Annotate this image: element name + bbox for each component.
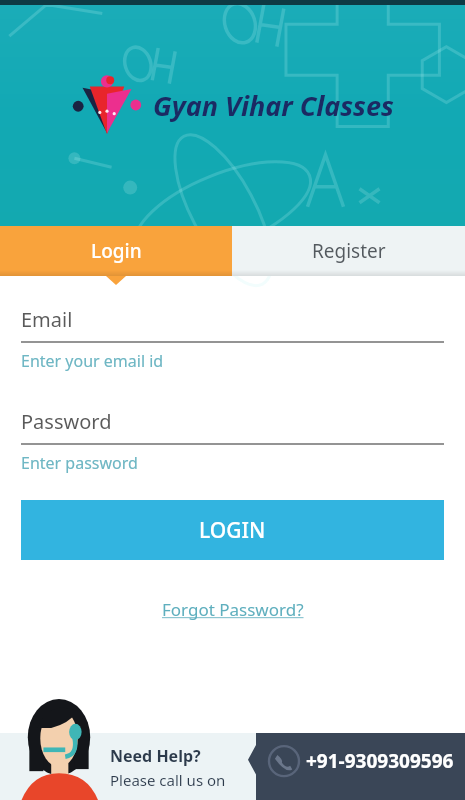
button[interactable]: Email [0,306,465,372]
staticText: Email [21,306,73,333]
staticText: Register [312,238,386,264]
staticText: Login [91,238,142,264]
staticText: Enter your email id [21,350,164,372]
staticText: LOGIN [199,516,266,545]
staticText: Need Help? [110,745,201,767]
button[interactable]: LOGIN [21,500,444,560]
button[interactable]: Forgot Password? [156,592,310,627]
button[interactable]: Password [0,408,465,474]
staticText: Password [21,408,112,435]
staticText: Please call us on [110,770,226,790]
staticText: Gyan Vihar Classes [153,87,394,124]
staticText: Enter password [21,452,138,474]
staticText: +91-9309309596 [306,748,454,774]
button[interactable]: Call +91-9309309596 [248,733,465,800]
button[interactable]: Register [232,226,465,276]
button[interactable]: Login [0,226,232,276]
staticText: Forgot Password? [162,598,304,621]
